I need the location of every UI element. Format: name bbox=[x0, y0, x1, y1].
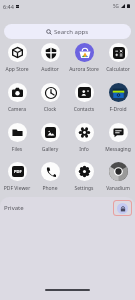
staticText: Aurora Store bbox=[67, 66, 101, 73]
button[interactable]: Search apps bbox=[4, 24, 131, 39]
button[interactable]: App Store bbox=[0, 43, 34, 73]
staticText: Phone bbox=[33, 185, 67, 192]
button[interactable]: Files bbox=[0, 123, 34, 153]
button[interactable]: Lock private space bbox=[114, 201, 131, 215]
staticText: Messaging bbox=[101, 146, 135, 153]
staticText: F-Droid bbox=[101, 106, 135, 113]
button[interactable]: Calculator bbox=[101, 43, 135, 73]
staticText: Calculator bbox=[101, 66, 135, 73]
button[interactable]: Aurora Store bbox=[67, 43, 101, 73]
button[interactable]: Clock bbox=[33, 83, 67, 113]
button[interactable]: Phone bbox=[33, 162, 67, 192]
staticText: Info bbox=[67, 146, 101, 153]
staticText: 5G bbox=[113, 3, 119, 9]
button[interactable]: Settings bbox=[67, 162, 101, 192]
staticText: Private bbox=[4, 204, 24, 212]
staticText: Clock bbox=[33, 106, 67, 113]
button[interactable]: PDF bbox=[0, 162, 34, 192]
button[interactable]: Contacts bbox=[67, 83, 101, 113]
staticText: Vanadium bbox=[101, 185, 135, 192]
staticText: 6:44 bbox=[3, 3, 14, 10]
staticText: PDF bbox=[14, 169, 22, 174]
staticText: Settings bbox=[67, 185, 101, 192]
button[interactable]: Auditor bbox=[33, 43, 67, 73]
button[interactable]: Vanadium bbox=[101, 162, 135, 192]
button[interactable]: Gallery bbox=[33, 123, 67, 153]
button[interactable]: Info bbox=[67, 123, 101, 153]
staticText: App Store bbox=[0, 66, 34, 73]
button[interactable]: Camera bbox=[0, 83, 34, 113]
staticText: Contacts bbox=[67, 106, 101, 113]
staticText: Camera bbox=[0, 106, 34, 113]
staticText: Files bbox=[0, 146, 34, 153]
staticText: Search apps bbox=[54, 28, 89, 36]
button[interactable]: F-Droid bbox=[101, 83, 135, 113]
button[interactable]: Messaging bbox=[101, 123, 135, 153]
staticText: Gallery bbox=[33, 146, 67, 153]
staticText: Auditor bbox=[33, 66, 67, 73]
staticText: PDF Viewer bbox=[0, 185, 34, 192]
